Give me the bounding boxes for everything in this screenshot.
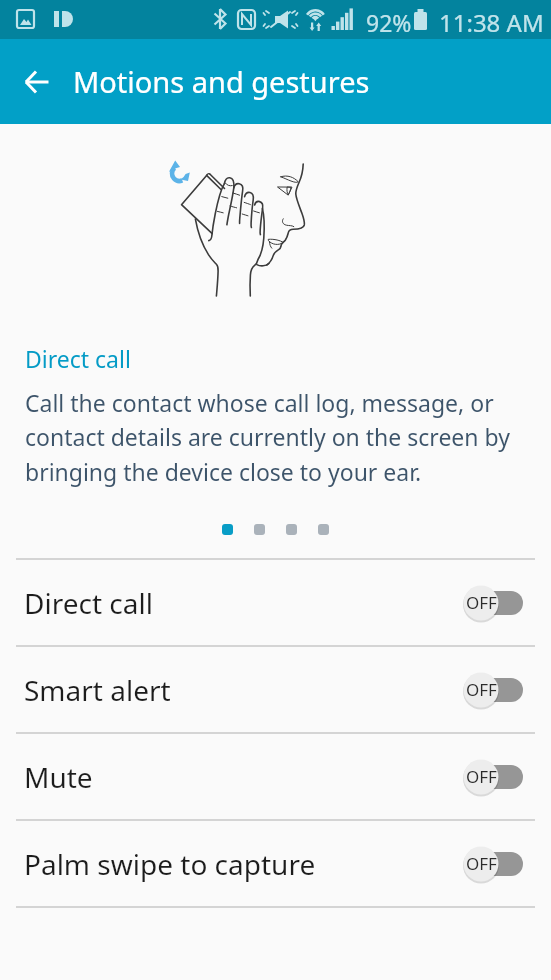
button[interactable]: Palm swipe to capture: [0, 821, 551, 906]
button[interactable]: Off: [463, 757, 523, 797]
button[interactable]: Smart alert: [0, 647, 551, 732]
button[interactable]: Mute: [0, 734, 551, 819]
staticText: Smart alert: [24, 671, 171, 709]
staticText: 92%: [366, 7, 412, 38]
staticText: OFF: [466, 765, 497, 788]
staticText: Mute: [24, 758, 93, 796]
button[interactable]: Off: [463, 670, 523, 710]
staticText: Direct call: [24, 584, 153, 622]
staticText: OFF: [466, 591, 497, 614]
staticText: Call the contact whose call log, message…: [25, 387, 531, 488]
staticText: Palm swipe to capture: [24, 845, 316, 883]
staticText: OFF: [466, 852, 497, 875]
staticText: OFF: [466, 678, 497, 701]
button[interactable]: Navigate up: [8, 39, 66, 124]
staticText: Direct call: [25, 343, 131, 374]
button[interactable]: Off: [463, 844, 523, 884]
staticText: 11:38 AM: [439, 6, 544, 39]
staticText: Motions and gestures: [73, 62, 370, 101]
button[interactable]: Off: [463, 583, 523, 623]
button[interactable]: Direct call: [0, 560, 551, 645]
